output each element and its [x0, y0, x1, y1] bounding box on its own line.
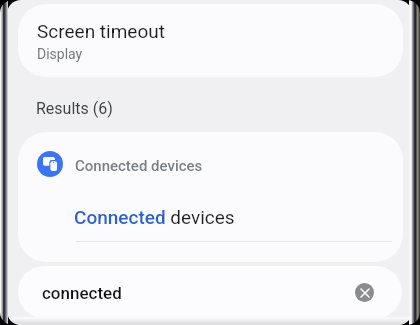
staticText: connected	[42, 283, 122, 303]
staticText: Screen timeout	[37, 20, 165, 42]
button[interactable]	[18, 189, 403, 241]
staticText: Results (6)	[36, 99, 113, 118]
button[interactable]	[18, 4, 403, 77]
staticText: Connected devices	[74, 206, 235, 228]
staticText: Connected devices	[75, 157, 203, 175]
button[interactable]: Clear search	[355, 283, 374, 302]
staticText: Display	[37, 46, 83, 62]
other: Connected devices	[37, 151, 63, 177]
button[interactable]	[18, 132, 403, 189]
button[interactable]	[18, 266, 402, 318]
